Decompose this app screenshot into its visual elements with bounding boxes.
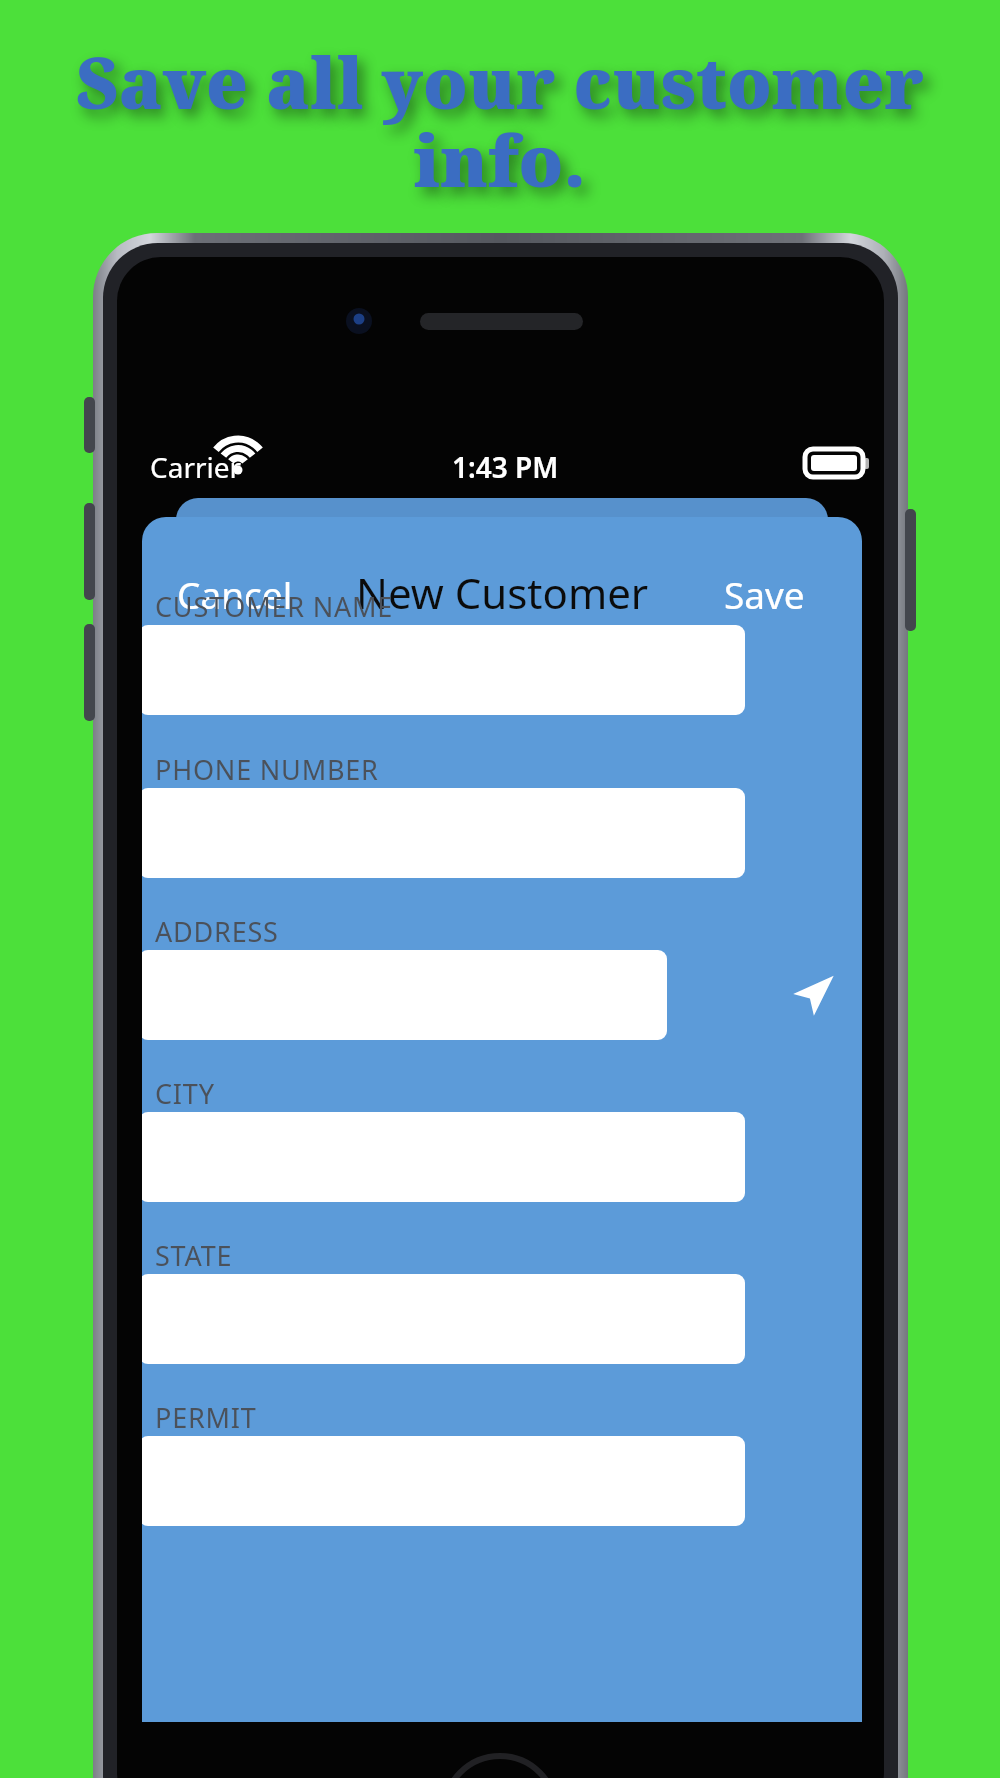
staticText: PERMIT <box>155 1399 257 1436</box>
staticText: CITY <box>155 1075 215 1112</box>
button[interactable] <box>142 1436 745 1526</box>
staticText: New Customer <box>356 564 649 621</box>
button[interactable] <box>142 788 745 878</box>
button[interactable]: Save <box>690 563 838 625</box>
staticText: CUSTOMER NAME <box>155 588 394 625</box>
staticText: Carrier <box>150 448 242 486</box>
button[interactable]: Cancel <box>150 563 320 625</box>
button[interactable] <box>142 1274 745 1364</box>
staticText: PHONE NUMBER <box>155 751 379 788</box>
staticText: Cancel <box>177 569 293 619</box>
button[interactable] <box>142 625 745 715</box>
staticText: Save all your customer info. <box>60 34 940 208</box>
button[interactable] <box>142 950 667 1040</box>
staticText: Save <box>724 569 805 619</box>
button[interactable]: Use current location <box>782 950 844 1040</box>
button[interactable] <box>142 1112 745 1202</box>
staticText: ADDRESS <box>155 913 279 950</box>
staticText: 1:43 PM <box>452 448 559 486</box>
staticText: STATE <box>155 1237 233 1274</box>
